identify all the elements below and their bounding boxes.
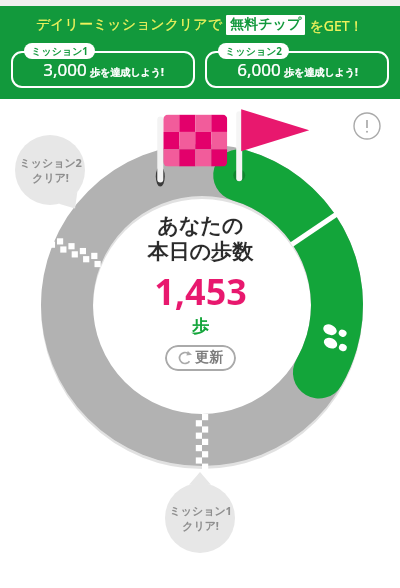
button[interactable]: Information bbox=[352, 111, 382, 141]
staticText: デイリーミッションクリアで bbox=[36, 16, 222, 34]
staticText: をGET！ bbox=[309, 16, 364, 35]
staticText: 歩 bbox=[192, 316, 209, 337]
staticText: 3,000 bbox=[43, 58, 87, 81]
button[interactable]: ミッション2 bbox=[13, 133, 87, 207]
staticText: 本日の歩数 bbox=[147, 239, 253, 265]
staticText: 歩を達成しよう! bbox=[284, 65, 358, 79]
button[interactable]: 無料チップ bbox=[226, 15, 305, 35]
staticText: ミッション1 bbox=[169, 503, 232, 518]
button[interactable]: ミッション1 bbox=[163, 481, 237, 555]
staticText: ミッション2 bbox=[19, 155, 82, 170]
button[interactable]: 3,000 bbox=[11, 43, 195, 88]
staticText: 更新 bbox=[195, 349, 223, 367]
staticText: あなたの bbox=[157, 213, 243, 239]
staticText: 1,453 bbox=[154, 267, 247, 316]
staticText: ミッション2 bbox=[225, 44, 282, 58]
staticText: ミッション1 bbox=[31, 44, 88, 58]
staticText: クリア! bbox=[32, 170, 69, 185]
staticText: 6,000 bbox=[237, 58, 281, 81]
button[interactable]: 更新 bbox=[165, 345, 236, 371]
staticText: クリア! bbox=[182, 518, 219, 533]
button[interactable]: 6,000 bbox=[205, 43, 389, 88]
staticText: 無料チップ bbox=[230, 16, 301, 34]
staticText: 歩を達成しよう! bbox=[90, 65, 164, 79]
